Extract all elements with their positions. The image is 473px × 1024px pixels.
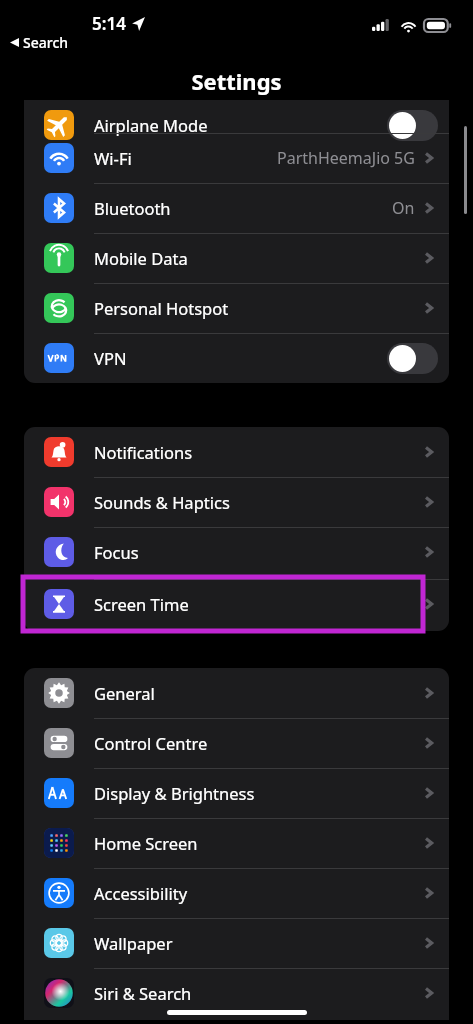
button[interactable]: Wi-Fi (24, 133, 449, 183)
staticText: General (94, 682, 155, 704)
staticText: Search (23, 33, 69, 52)
staticText: Sounds & Haptics (94, 491, 230, 513)
button[interactable]: Airplane Mode (24, 100, 449, 150)
button[interactable]: VPN toggle (387, 343, 438, 374)
staticText: 5:14 (92, 12, 126, 35)
button[interactable]: General (24, 668, 449, 718)
staticText: Notifications (94, 441, 193, 463)
button[interactable]: Bluetooth (24, 183, 449, 233)
button[interactable]: Focus (24, 527, 449, 577)
button[interactable]: VPN (24, 333, 449, 383)
button[interactable]: Screen Time (24, 579, 449, 629)
staticText: Focus (94, 541, 139, 563)
button[interactable]: Control Centre (24, 718, 449, 768)
staticText: VPN (94, 347, 127, 369)
staticText: ParthHeemaJio 5G (277, 147, 415, 169)
button[interactable]: Personal Hotspot (24, 283, 449, 333)
staticText: Wi-Fi (94, 147, 132, 169)
staticText: Settings (191, 66, 282, 96)
staticText: Siri & Search (94, 982, 192, 1004)
button[interactable]: Siri & Search (24, 968, 449, 1018)
button[interactable]: Search (10, 33, 69, 52)
button[interactable]: Display & Brightness (24, 768, 449, 818)
button[interactable]: Accessibility (24, 868, 449, 918)
button[interactable]: Home Screen (24, 818, 449, 868)
button[interactable]: Airplane Mode toggle (387, 110, 438, 141)
staticText: Control Centre (94, 732, 208, 754)
staticText: Home Screen (94, 832, 198, 854)
staticText: On (392, 197, 415, 219)
button[interactable]: Mobile Data (24, 233, 449, 283)
staticText: Bluetooth (94, 197, 171, 219)
staticText: Accessibility (94, 882, 188, 904)
staticText: Mobile Data (94, 247, 188, 269)
staticText: Display & Brightness (94, 782, 255, 804)
staticText: Wallpaper (94, 932, 173, 954)
staticText: Screen Time (94, 593, 189, 615)
staticText: Airplane Mode (94, 114, 208, 136)
button[interactable]: Sounds & Haptics (24, 477, 449, 527)
button[interactable]: Wallpaper (24, 918, 449, 968)
staticText: Personal Hotspot (94, 297, 229, 319)
button[interactable]: Notifications (24, 427, 449, 477)
